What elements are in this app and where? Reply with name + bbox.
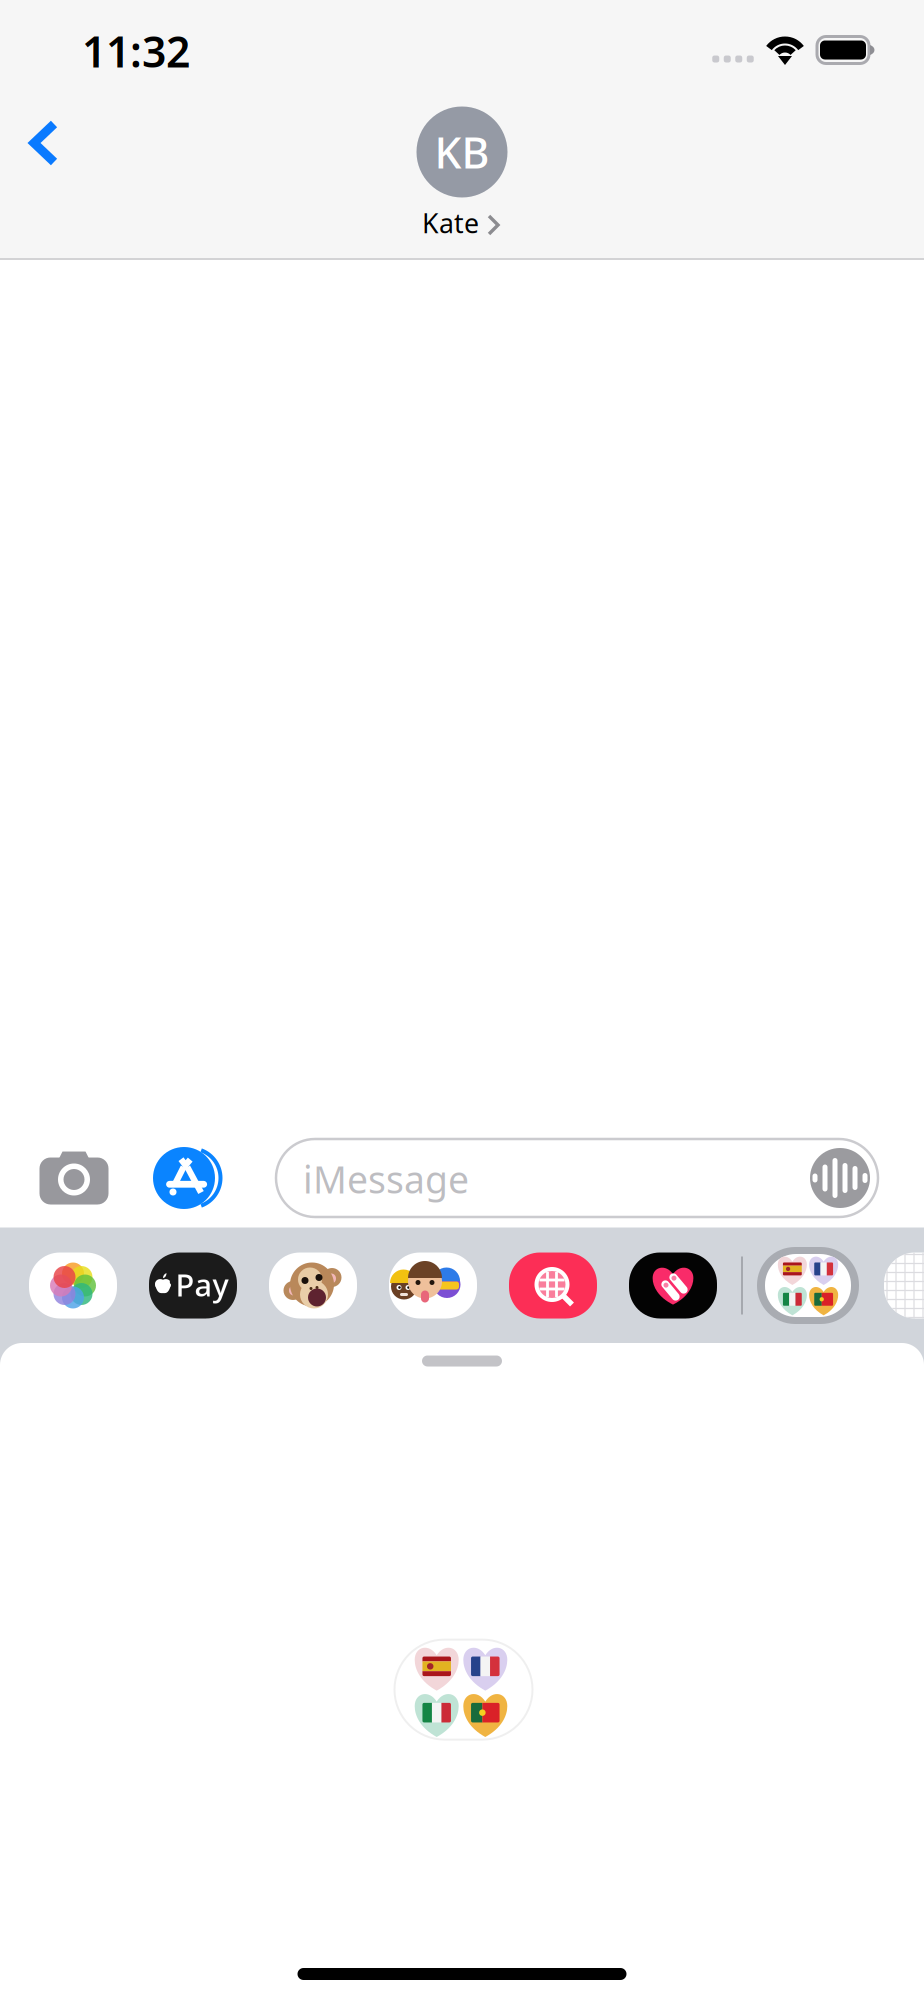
staticText: iMessage: [303, 1154, 469, 1204]
button[interactable]: Photos: [25, 1245, 120, 1325]
button[interactable]: Health: [625, 1245, 720, 1325]
button[interactable]: Monkey memoji: [265, 1245, 360, 1325]
staticText: KB: [434, 124, 489, 180]
button[interactable]: Flag stickers: [756, 1247, 860, 1323]
button[interactable]: Back: [6, 105, 82, 181]
button[interactable]: Apps: [146, 1133, 236, 1223]
button[interactable]: Camera: [29, 1133, 119, 1223]
button[interactable]: Apple Pay: [145, 1245, 240, 1325]
staticText: 11:32: [82, 23, 190, 79]
staticText: Kate: [422, 205, 479, 241]
button[interactable]: Record audio message: [804, 1142, 876, 1214]
button[interactable]: Images: [505, 1245, 600, 1325]
button[interactable]: Memoji: [385, 1245, 480, 1325]
staticText: Pay: [175, 1264, 228, 1305]
